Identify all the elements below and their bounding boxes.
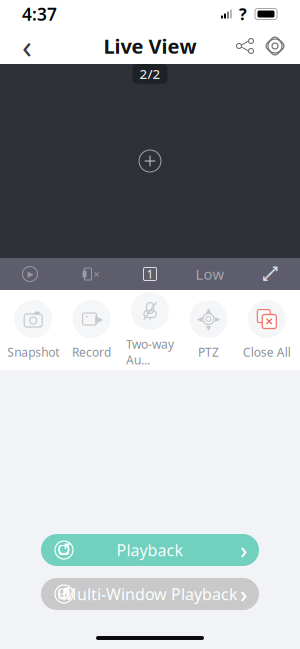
button[interactable]: Add camera <box>0 64 300 258</box>
staticText: Close All <box>243 344 291 360</box>
staticText: Low <box>195 264 224 284</box>
button[interactable]: Snapshot <box>4 300 62 360</box>
staticText: Two-way Au... <box>126 336 174 368</box>
button[interactable]: Settings <box>260 31 290 61</box>
staticText: ↺ <box>56 583 72 604</box>
staticText: ▲ <box>206 306 211 314</box>
staticText: ◀ <box>197 315 202 323</box>
button[interactable]: Multi-Window Playback <box>41 578 259 610</box>
staticText: ▶ <box>27 269 33 279</box>
button[interactable]: ✕ <box>238 300 296 360</box>
button[interactable]: Low <box>180 258 240 290</box>
button[interactable]: Playback <box>41 534 259 566</box>
staticText: ↺ <box>56 539 72 560</box>
button[interactable]: Share <box>230 31 260 61</box>
staticText: 4:37 <box>22 2 57 25</box>
staticText: Multi-Window Playback <box>62 583 238 605</box>
staticText: ▶ <box>215 315 220 323</box>
staticText: ▼ <box>206 324 211 332</box>
button[interactable]: Two-way Au... <box>121 292 179 368</box>
button[interactable]: Play <box>0 258 60 290</box>
button[interactable]: Back <box>10 29 44 63</box>
staticText: 2/2 <box>139 65 160 83</box>
button[interactable]: ▶ <box>62 300 121 360</box>
button[interactable]: Full screen <box>240 258 300 290</box>
button[interactable]: Mute <box>60 258 120 290</box>
staticText: ‹ <box>22 25 32 67</box>
staticText: › <box>240 579 247 609</box>
staticText: 1 <box>146 266 153 282</box>
button[interactable]: ▲ <box>179 300 238 360</box>
staticText: × <box>93 267 99 281</box>
staticText: Live View <box>103 33 196 59</box>
staticText: Record <box>72 344 111 360</box>
button[interactable]: Window layout <box>120 258 180 290</box>
staticText: ▶ <box>95 313 103 325</box>
staticText: › <box>240 535 247 565</box>
staticText: ↗ <box>267 263 279 279</box>
staticText: ✕ <box>265 315 274 328</box>
staticText: Snapshot <box>7 344 59 360</box>
staticText: ? <box>239 3 247 25</box>
staticText: Playback <box>116 539 183 561</box>
staticText: PTZ <box>198 344 219 360</box>
staticText: ↙ <box>261 269 273 285</box>
